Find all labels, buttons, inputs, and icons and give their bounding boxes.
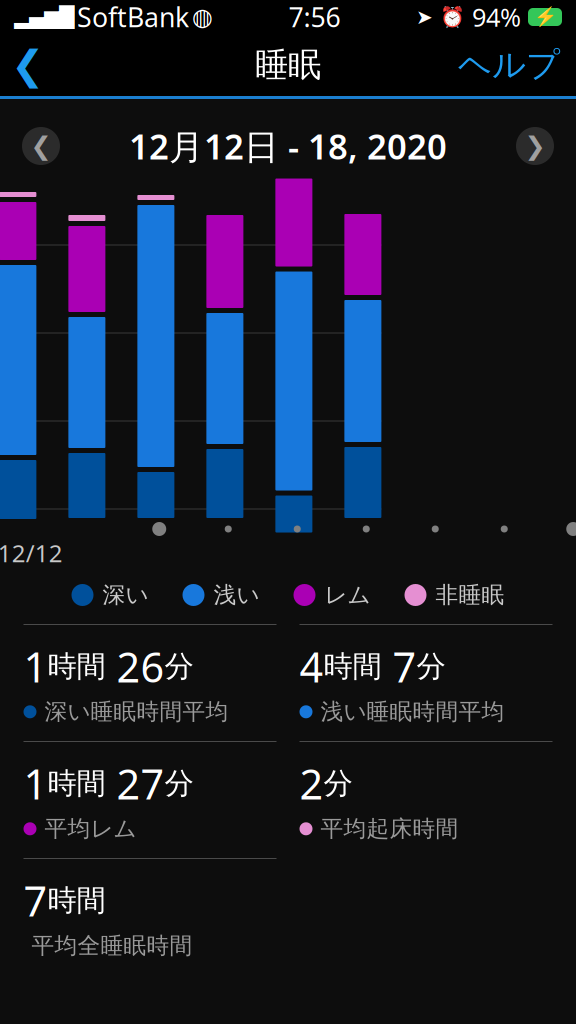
button[interactable]: ヘルプ bbox=[442, 34, 576, 96]
staticText: 26 bbox=[116, 639, 164, 694]
staticText: 2 bbox=[299, 756, 323, 811]
staticText: 時間 bbox=[47, 882, 105, 918]
staticText: 深い睡眠時間平均 bbox=[44, 698, 228, 726]
staticText: ⚡ bbox=[533, 6, 556, 28]
staticText: ヘルプ bbox=[458, 44, 560, 85]
staticText: 深い bbox=[102, 581, 148, 609]
staticText: ❯ bbox=[524, 132, 545, 160]
staticText: ❮ bbox=[30, 132, 51, 160]
staticText: 非睡眠 bbox=[435, 581, 504, 609]
staticText: 1 bbox=[23, 639, 47, 694]
staticText: 時間 bbox=[323, 648, 381, 684]
staticText: 7:56 bbox=[288, 0, 340, 35]
staticText: 分 bbox=[164, 765, 193, 801]
staticText: 7 bbox=[23, 873, 47, 928]
staticText: 時間 bbox=[47, 765, 105, 801]
staticText: ➤ bbox=[416, 6, 433, 28]
staticText: ❮ bbox=[11, 42, 45, 88]
button[interactable]: Back bbox=[0, 34, 56, 96]
staticText: ◍ bbox=[192, 3, 213, 31]
staticText: 睡眠 bbox=[255, 44, 321, 85]
staticText: 94% bbox=[472, 0, 521, 34]
staticText: 4 bbox=[299, 639, 323, 694]
staticText: 1 bbox=[23, 756, 47, 811]
staticText: 平均起床時間 bbox=[320, 815, 458, 843]
button[interactable]: Previous week bbox=[22, 127, 60, 165]
staticText: 時間 bbox=[47, 648, 105, 684]
button[interactable]: Next week bbox=[516, 127, 554, 165]
staticText: 浅い bbox=[213, 581, 259, 609]
staticText: 平均全睡眠時間 bbox=[31, 932, 192, 960]
staticText: 浅い睡眠時間平均 bbox=[320, 698, 504, 726]
staticText: 12/12 bbox=[0, 537, 63, 569]
staticText: SoftBank bbox=[77, 0, 189, 35]
staticText: 分 bbox=[164, 648, 193, 684]
staticText: 7 bbox=[392, 639, 416, 694]
staticText: ▂▄▆█ bbox=[14, 6, 74, 28]
staticText: 分 bbox=[323, 765, 352, 801]
staticText: 分 bbox=[416, 648, 445, 684]
staticText: 平均レム bbox=[44, 815, 136, 843]
staticText: 27 bbox=[116, 756, 164, 811]
staticText: 12月12日 - 18, 2020 bbox=[129, 123, 447, 169]
staticText: ⏰ bbox=[440, 6, 465, 28]
staticText: レム bbox=[324, 581, 370, 609]
